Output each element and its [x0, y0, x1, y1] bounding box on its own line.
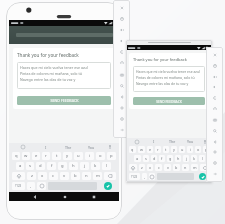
button[interactable]: g [58, 162, 67, 170]
button[interactable]: Rotate right [208, 104, 221, 114]
button[interactable]: i [187, 146, 193, 153]
button[interactable]: s [26, 162, 34, 170]
button[interactable]: Screenshot [115, 70, 128, 80]
button[interactable]: w [138, 146, 145, 153]
button[interactable]: j [80, 162, 89, 170]
button[interactable]: Rotate right [115, 58, 128, 68]
button[interactable]: k [191, 155, 197, 162]
button[interactable] [200, 164, 209, 171]
button[interactable]: u [179, 146, 185, 153]
button[interactable]: ?123 [129, 173, 140, 180]
button[interactable]: n [82, 172, 91, 180]
button[interactable]: Back [115, 92, 128, 102]
button[interactable]: Volume down [115, 36, 128, 46]
button[interactable]: m [191, 164, 198, 171]
button[interactable]: More [115, 125, 128, 135]
button[interactable]: x [38, 172, 47, 180]
button[interactable]: , [142, 173, 147, 180]
button[interactable]: q [129, 146, 136, 153]
button[interactable]: ?123 [12, 182, 25, 190]
button[interactable]: a [16, 162, 24, 170]
button[interactable]: Overview [208, 158, 221, 168]
button[interactable] [37, 182, 46, 190]
button[interactable]: Screenshot [208, 115, 221, 125]
button[interactable]: n [182, 164, 189, 171]
button[interactable]: p [107, 152, 116, 160]
button[interactable]: r [42, 152, 50, 160]
button[interactable]: w [22, 152, 30, 160]
button[interactable]: Volume up [208, 72, 221, 82]
button[interactable]: b [173, 164, 180, 171]
button[interactable]: Overview [115, 114, 128, 124]
button[interactable]: Power [115, 14, 128, 24]
button[interactable]: Close [115, 3, 128, 13]
staticText: g [169, 156, 172, 161]
button[interactable]: q [12, 152, 20, 160]
button[interactable]: x [147, 164, 153, 171]
button[interactable]: u [74, 152, 83, 160]
button[interactable]: r [155, 146, 161, 153]
button[interactable]: Zoom [208, 126, 221, 136]
button[interactable]: i [85, 152, 94, 160]
button[interactable]: Back [208, 137, 221, 147]
button[interactable]: z [139, 164, 145, 171]
button[interactable]: o [195, 146, 201, 153]
button[interactable]: v [60, 172, 69, 180]
button[interactable]: Volume down [208, 82, 221, 92]
button[interactable]: a [134, 155, 141, 162]
button[interactable]: h [69, 162, 78, 170]
button[interactable]: Voice input [199, 140, 210, 144]
button[interactable]: c [155, 164, 162, 171]
button[interactable]: f [159, 155, 165, 162]
button[interactable]: k [91, 162, 100, 170]
button[interactable]: Zoom [115, 81, 128, 91]
button[interactable]: Back [30, 192, 39, 201]
button[interactable]: v [164, 164, 171, 171]
button[interactable]: Home [115, 103, 128, 113]
button[interactable]: Power [208, 61, 221, 71]
button[interactable]: c [49, 172, 58, 180]
button[interactable]: d [151, 155, 157, 162]
button[interactable]: Overview [89, 192, 98, 201]
button[interactable]: l [199, 155, 205, 162]
button[interactable] [12, 172, 25, 180]
button[interactable]: Voice input [103, 145, 117, 149]
button[interactable]: t [163, 146, 169, 153]
button[interactable]: Home [208, 147, 221, 157]
button[interactable]: f [47, 162, 56, 170]
button[interactable]: Send [199, 173, 206, 180]
button[interactable]: SEND FEEDBACK [17, 96, 111, 105]
button[interactable]: p [203, 146, 209, 153]
button[interactable]: More [208, 169, 221, 179]
button[interactable]: o [96, 152, 105, 160]
button[interactable]: Rotate left [115, 47, 128, 57]
button[interactable]: s [143, 155, 149, 162]
button[interactable]: Rotate left [208, 93, 221, 103]
button[interactable]: t [52, 152, 61, 160]
staticText: a [19, 163, 22, 169]
button[interactable]: y [171, 146, 177, 153]
button[interactable]: j [183, 155, 189, 162]
button[interactable]: l [102, 162, 111, 170]
button[interactable] [149, 173, 155, 180]
button[interactable]: , [27, 182, 35, 190]
button[interactable]: e [32, 152, 40, 160]
button[interactable]: g [167, 155, 173, 162]
button[interactable]: Send [104, 182, 112, 190]
button[interactable]: h [175, 155, 181, 162]
button[interactable]: y [63, 152, 72, 160]
button[interactable]: e [147, 146, 153, 153]
button[interactable]: Volume up [115, 25, 128, 35]
button[interactable]: z [27, 172, 36, 180]
button[interactable]: SEND FEEDBACK [133, 97, 205, 105]
button[interactable]: d [36, 162, 45, 170]
button[interactable] [104, 172, 116, 180]
button[interactable]: Close [208, 50, 221, 60]
button[interactable]: m [93, 172, 102, 180]
button[interactable]: Home [60, 192, 69, 201]
staticText: m [193, 165, 197, 170]
button[interactable]: b [71, 172, 80, 180]
button[interactable] [129, 164, 137, 171]
